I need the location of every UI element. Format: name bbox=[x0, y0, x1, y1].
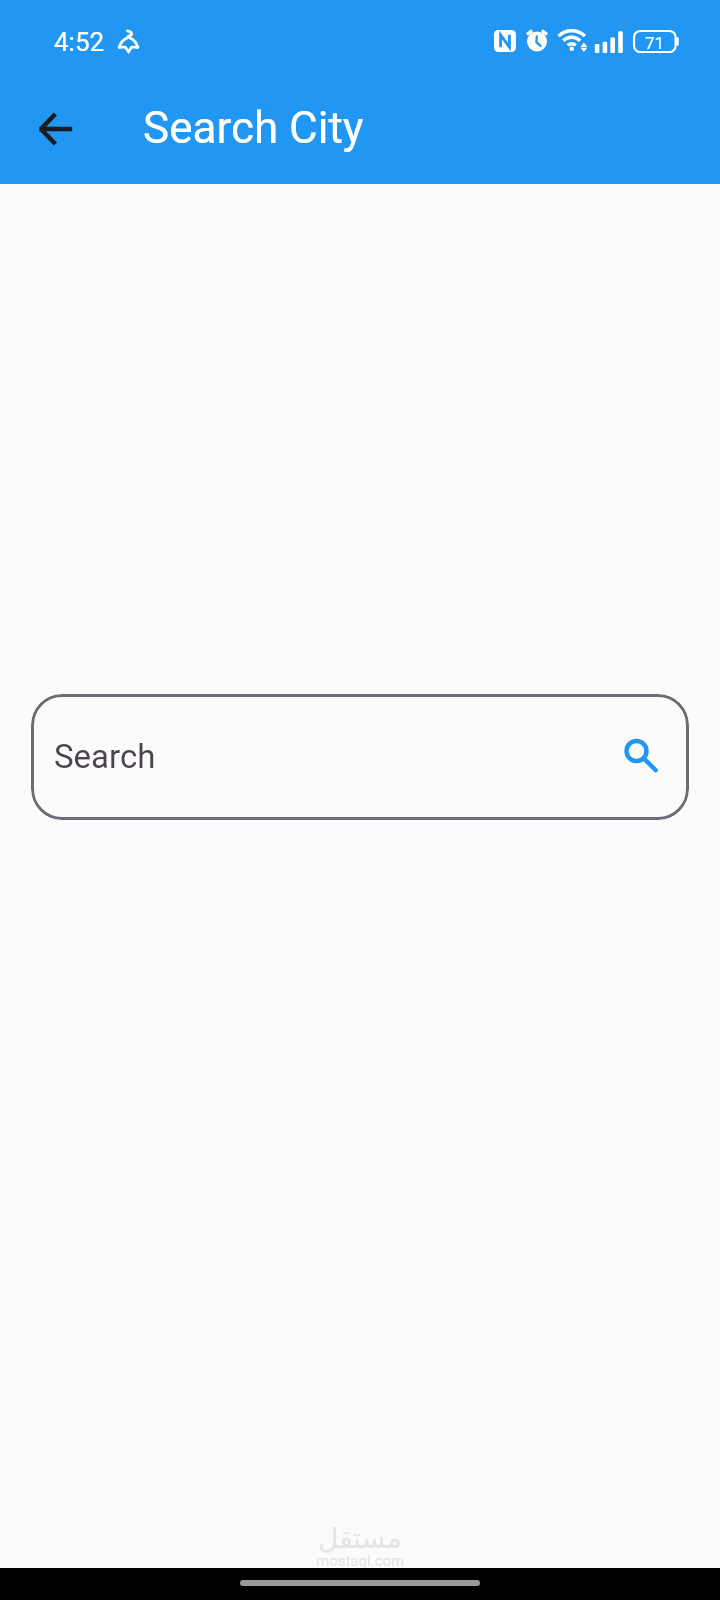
button[interactable]: Back bbox=[24, 97, 88, 161]
staticText: mostaql.com bbox=[316, 1552, 405, 1570]
button[interactable]: Search bbox=[31, 694, 689, 820]
button[interactable]: Search bbox=[613, 728, 670, 785]
staticText: مستقل bbox=[318, 1522, 402, 1555]
staticText: 71 bbox=[645, 33, 665, 53]
staticText: Search bbox=[54, 737, 156, 776]
staticText: 4:52 bbox=[54, 27, 105, 57]
staticText: Search City bbox=[143, 102, 364, 154]
